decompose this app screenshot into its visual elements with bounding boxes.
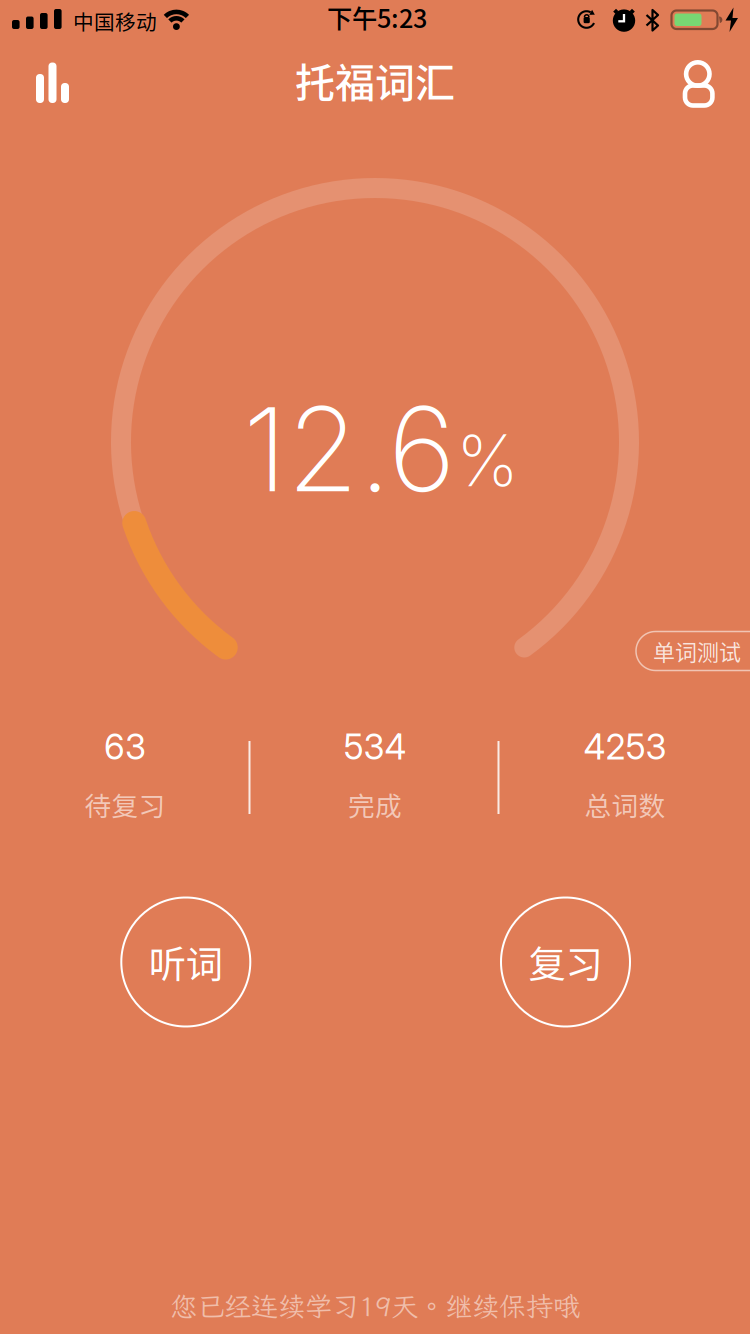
staticText: 复习: [528, 935, 602, 989]
staticText: 待复习: [84, 785, 165, 823]
staticText: 托福词汇: [295, 51, 455, 109]
staticText: 下午5:23: [327, 0, 427, 35]
staticText: 您已经连续学习19天。继续保持哦: [170, 1288, 580, 1324]
staticText: 中国移动: [73, 6, 157, 36]
button[interactable]: 听词: [121, 897, 250, 1026]
staticText: 534: [343, 726, 406, 768]
button[interactable]: [0, 0, 110, 130]
staticText: 单词测试: [653, 635, 741, 667]
button[interactable]: 复习: [501, 897, 630, 1026]
button[interactable]: 单词测试: [636, 631, 750, 670]
button[interactable]: [0, 0, 750, 130]
staticText: 听词: [149, 935, 223, 989]
staticText: 4253: [583, 726, 666, 768]
staticText: 完成: [348, 785, 402, 823]
staticText: 总词数: [584, 785, 665, 823]
staticText: 63: [104, 726, 146, 768]
staticText: 12.6%: [243, 381, 519, 517]
